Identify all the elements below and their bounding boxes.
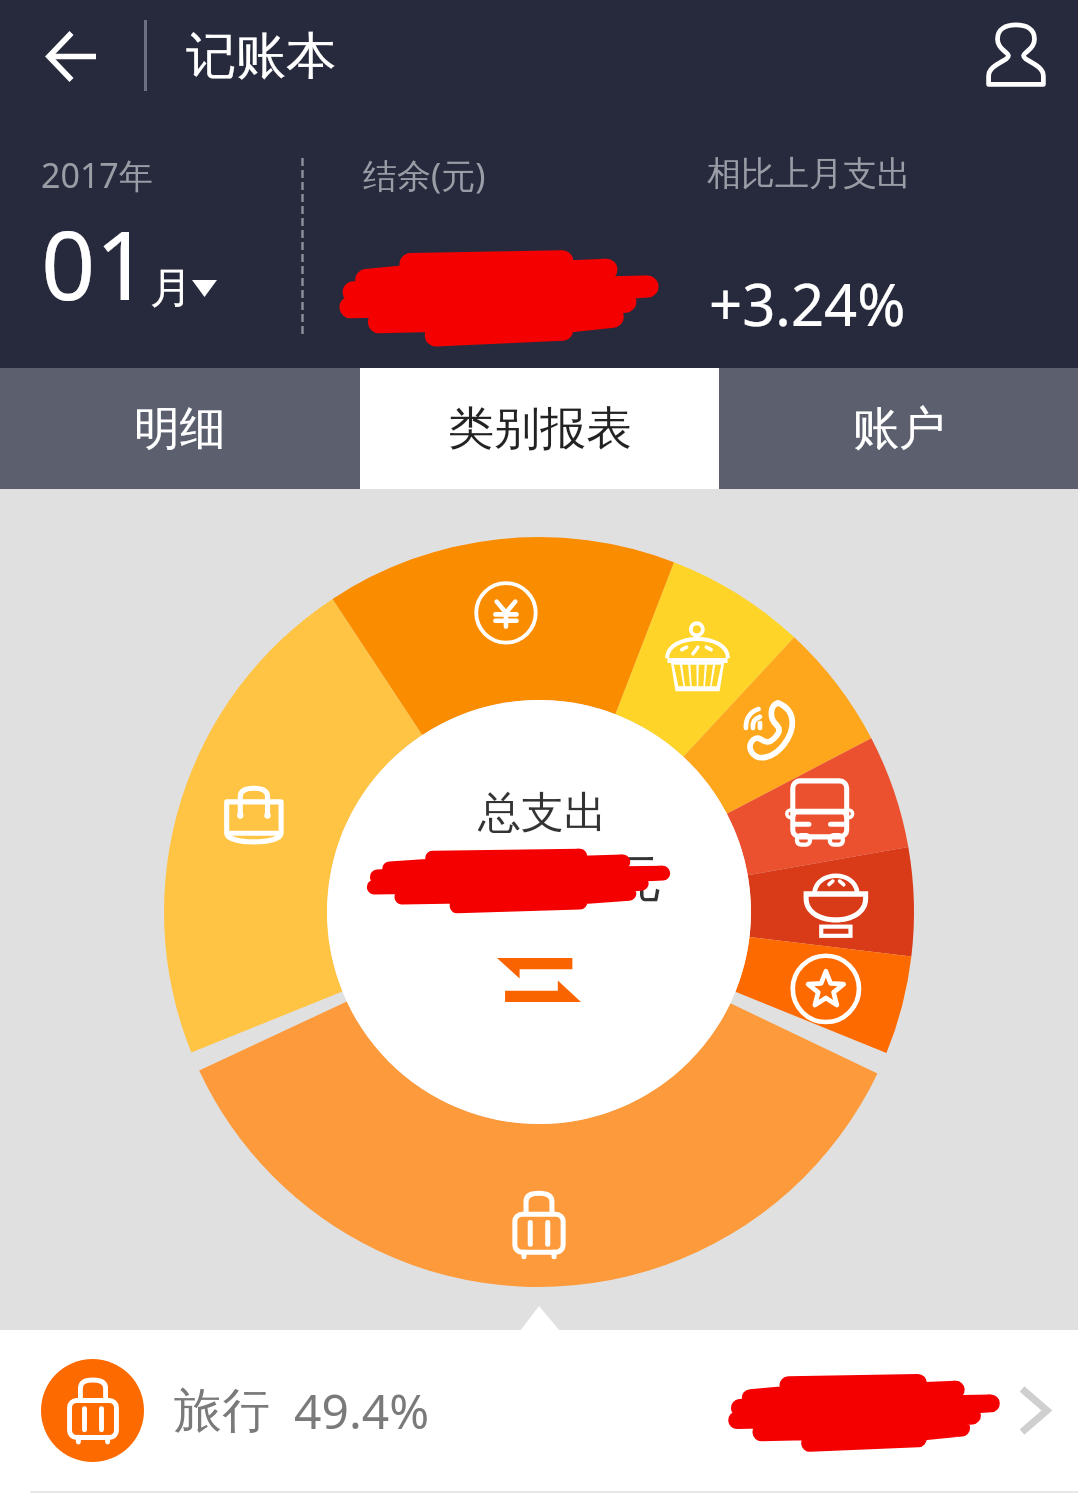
- staticText: 月: [150, 262, 192, 315]
- staticText: 结余(元): [363, 152, 486, 198]
- staticText: 49.4%: [294, 1378, 430, 1443]
- staticText: 明细: [134, 400, 226, 458]
- button[interactable]: Profile: [962, 2, 1070, 110]
- staticText: 类别报表: [448, 400, 632, 458]
- staticText: 相比上月支出: [707, 152, 911, 195]
- button[interactable]: 账户: [719, 368, 1078, 489]
- button[interactable]: 旅行: [0, 1330, 1078, 1491]
- staticText: 元: [612, 848, 662, 911]
- button[interactable]: Back: [18, 2, 126, 110]
- staticText: 旅行: [174, 1381, 270, 1441]
- staticText: 01: [41, 198, 150, 327]
- staticText: 2017年: [41, 152, 153, 198]
- staticText: 账户: [853, 400, 945, 458]
- button[interactable]: 类别报表: [360, 368, 719, 489]
- staticText: +3.24%: [709, 264, 906, 343]
- button[interactable]: 2017年: [41, 152, 217, 327]
- staticText: 记账本: [186, 25, 336, 88]
- button[interactable]: 明细: [0, 368, 360, 489]
- staticText: 总支出: [478, 786, 607, 840]
